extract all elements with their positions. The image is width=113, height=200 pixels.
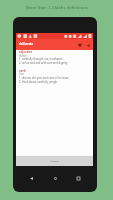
button[interactable]: Share bbox=[83, 40, 93, 50]
button[interactable]: Back bbox=[26, 173, 37, 184]
button[interactable]: Recents bbox=[73, 173, 84, 184]
staticText: HISTORY bbox=[50, 160, 60, 163]
staticText: क्रिया bbox=[19, 72, 25, 76]
staticText: More than 1.3 lakhs definitions bbox=[26, 5, 88, 11]
button[interactable]: Home bbox=[50, 173, 61, 184]
staticText: deliberate bbox=[19, 42, 34, 46]
staticText: verb bbox=[19, 69, 26, 73]
staticText: adjective bbox=[19, 50, 33, 54]
button[interactable]: HISTORY bbox=[16, 156, 93, 166]
button[interactable]: Favourite bbox=[75, 40, 85, 50]
staticText: 1. discuss the pros and cons of an issue bbox=[19, 76, 69, 80]
staticText: 2. think about carefully; weigh bbox=[19, 80, 57, 84]
staticText: 2. unhurried and with care and dignity bbox=[19, 61, 68, 65]
staticText: 1. carefully thought out in advance bbox=[19, 57, 63, 61]
staticText: विशेषण bbox=[19, 54, 27, 58]
